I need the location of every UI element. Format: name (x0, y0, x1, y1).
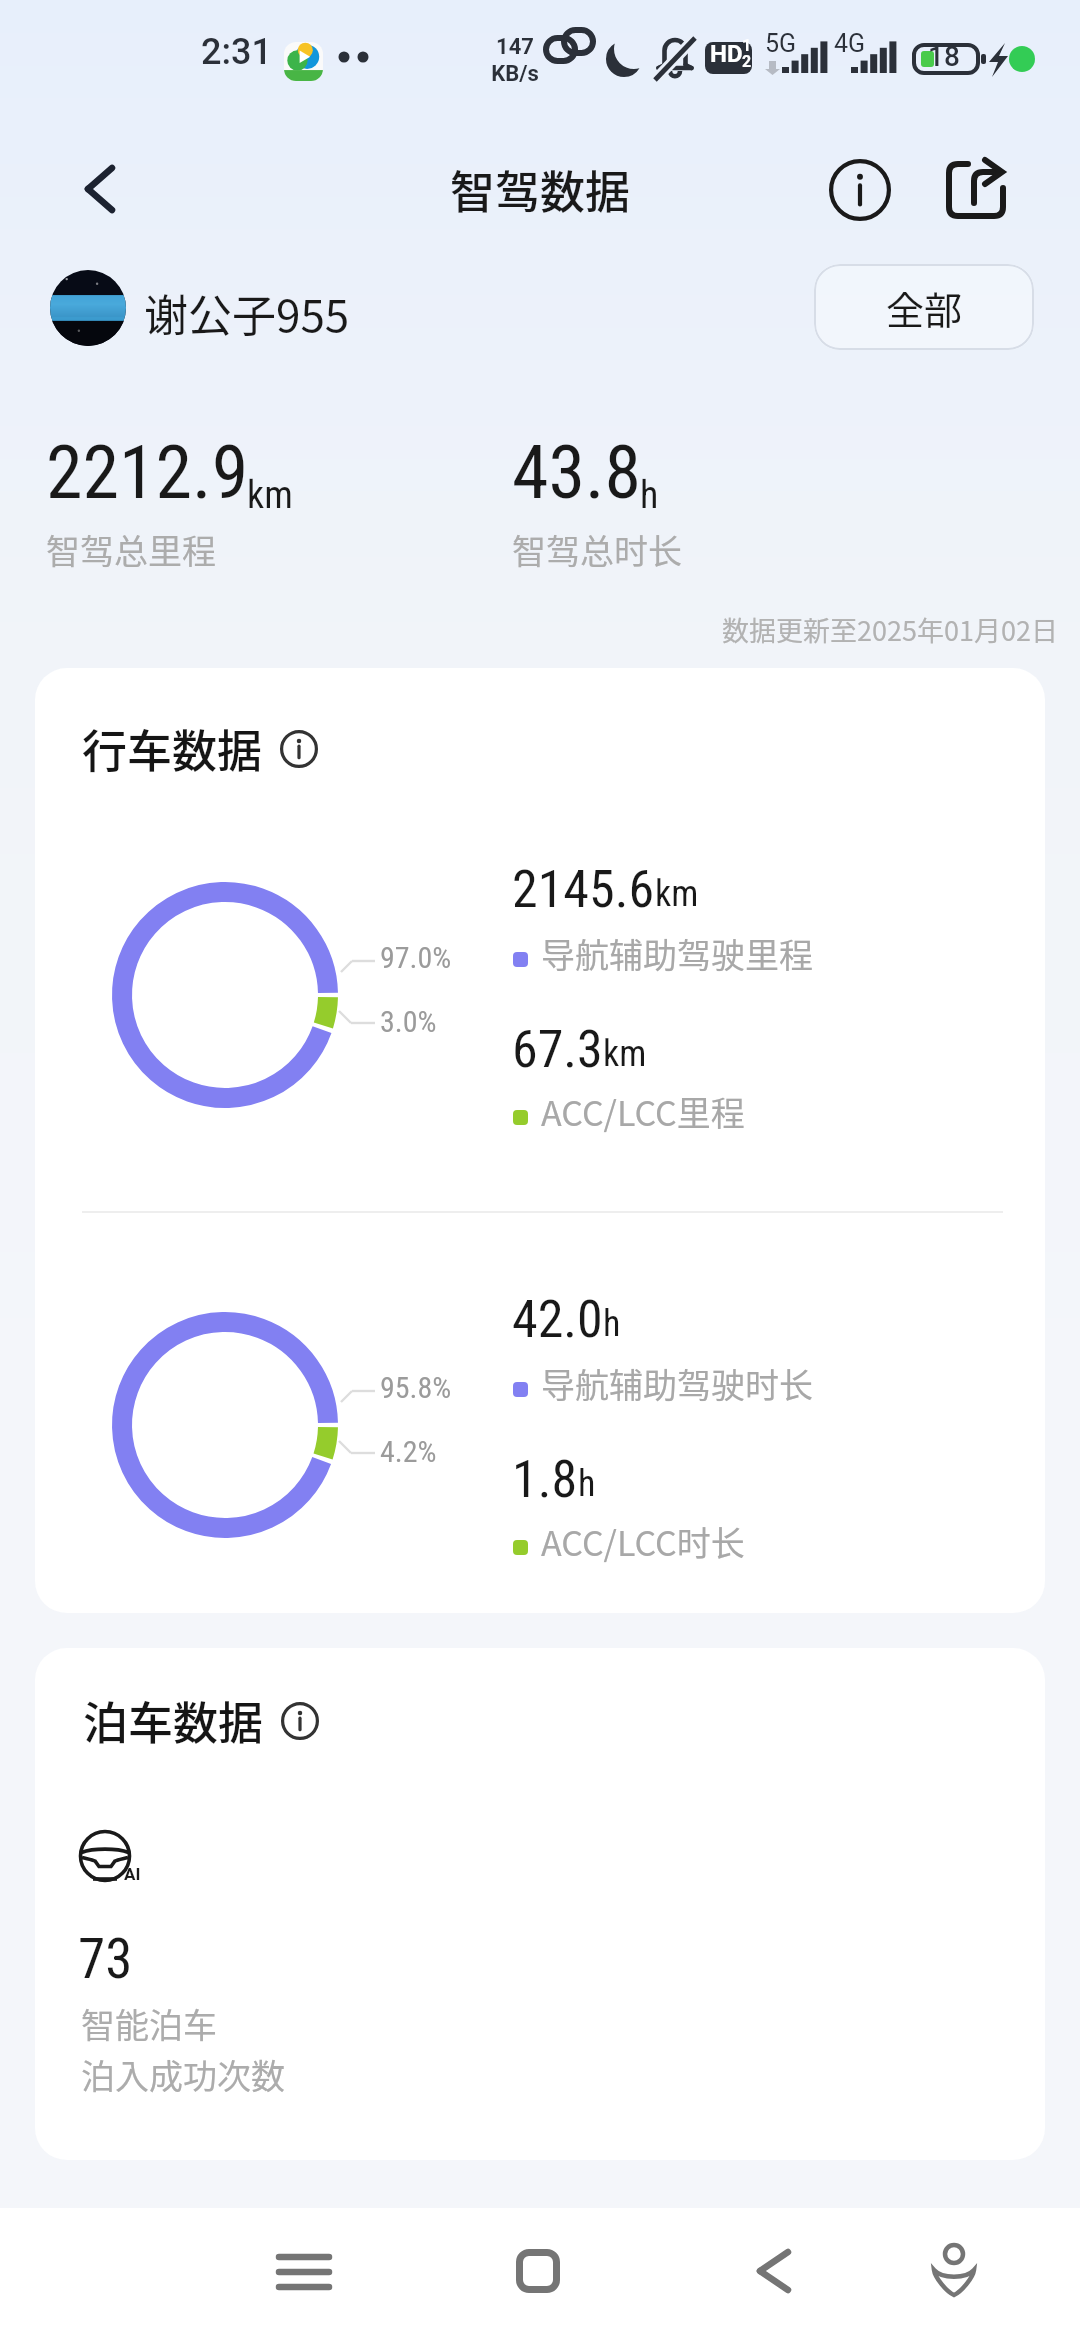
button[interactable]: Info (814, 144, 906, 236)
staticText: 18 (928, 40, 960, 73)
staticText: 智能泊车 (81, 1999, 217, 2048)
staticText: 泊入成功次数 (81, 2050, 285, 2099)
staticText: 数据更新至2025年01月02日 (722, 610, 1058, 649)
staticText: ACC/LCC时长 (541, 1517, 745, 1566)
staticText: km (603, 1033, 647, 1075)
staticText: 95.8% (380, 1370, 452, 1405)
staticText: 2:31 (201, 31, 272, 73)
button[interactable]: Back (56, 142, 152, 238)
button[interactable]: Assistant (906, 2223, 1002, 2319)
button[interactable]: 全部 (814, 264, 1034, 350)
staticText: 2212.9 (46, 429, 249, 516)
staticText: 42.0 (512, 1289, 603, 1350)
button[interactable]: Recent apps (256, 2225, 352, 2321)
staticText: 智驾数据 (450, 157, 631, 222)
staticText: h (640, 473, 659, 518)
staticText: 67.3 (512, 1019, 603, 1080)
staticText: 73 (78, 1927, 133, 1991)
staticText: 智驾总时长 (512, 525, 682, 574)
staticText: 导航辅助驾驶里程 (541, 929, 813, 978)
staticText: 1.8 (512, 1449, 578, 1510)
staticText: 4G (834, 29, 866, 58)
staticText: 147 KB/s (491, 34, 539, 86)
button[interactable]: Back (726, 2223, 822, 2319)
staticText: km (247, 473, 293, 518)
staticText: HD (710, 40, 743, 68)
button[interactable]: Home (490, 2223, 586, 2319)
staticText: 5G (765, 29, 797, 58)
staticText: 导航辅助驾驶时长 (541, 1359, 813, 1408)
staticText: 43.8 (512, 429, 642, 516)
staticText: 泊车数据 (83, 1688, 264, 1753)
staticText: 97.0% (380, 940, 452, 975)
staticText: h (578, 1463, 596, 1505)
button[interactable]: Share (930, 144, 1022, 236)
staticText: 4.2% (380, 1434, 437, 1469)
staticText: km (655, 873, 699, 915)
staticText: 全部 (886, 280, 963, 335)
staticText: 2145.6 (512, 859, 655, 920)
staticText: 谢公子955 (144, 281, 350, 345)
staticText: 行车数据 (82, 716, 263, 781)
staticText: h (603, 1303, 621, 1345)
staticText: 1 2 (742, 36, 752, 71)
staticText: 3.0% (380, 1004, 437, 1039)
staticText: ACC/LCC里程 (541, 1087, 745, 1136)
staticText: 智驾总里程 (46, 525, 216, 574)
staticText: AI (124, 1864, 141, 1884)
